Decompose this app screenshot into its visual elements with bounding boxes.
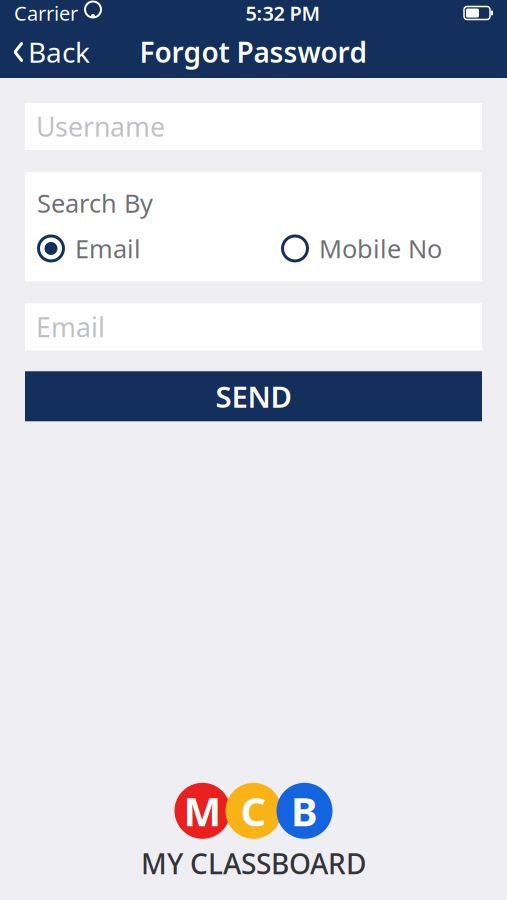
staticText: 5:32 PM [245, 0, 320, 26]
staticText: C [240, 784, 266, 837]
staticText: MY CLASSBOARD [141, 845, 366, 882]
staticText: Email [75, 232, 141, 265]
staticText: SEND [215, 377, 291, 416]
staticText: Search By [37, 186, 153, 220]
staticText: M [183, 784, 221, 837]
button[interactable]: Email [37, 230, 141, 267]
staticText: Back [28, 33, 90, 71]
staticText: Email [36, 309, 105, 344]
button[interactable]: SEND [25, 371, 482, 421]
staticText: B [291, 784, 318, 837]
button[interactable]: Back [0, 25, 102, 79]
staticText: Carrier [14, 0, 78, 26]
staticText: Username [36, 109, 165, 144]
staticText: Mobile No [319, 232, 442, 265]
staticText: Forgot Password [139, 33, 367, 71]
button[interactable]: Mobile No [281, 230, 442, 267]
